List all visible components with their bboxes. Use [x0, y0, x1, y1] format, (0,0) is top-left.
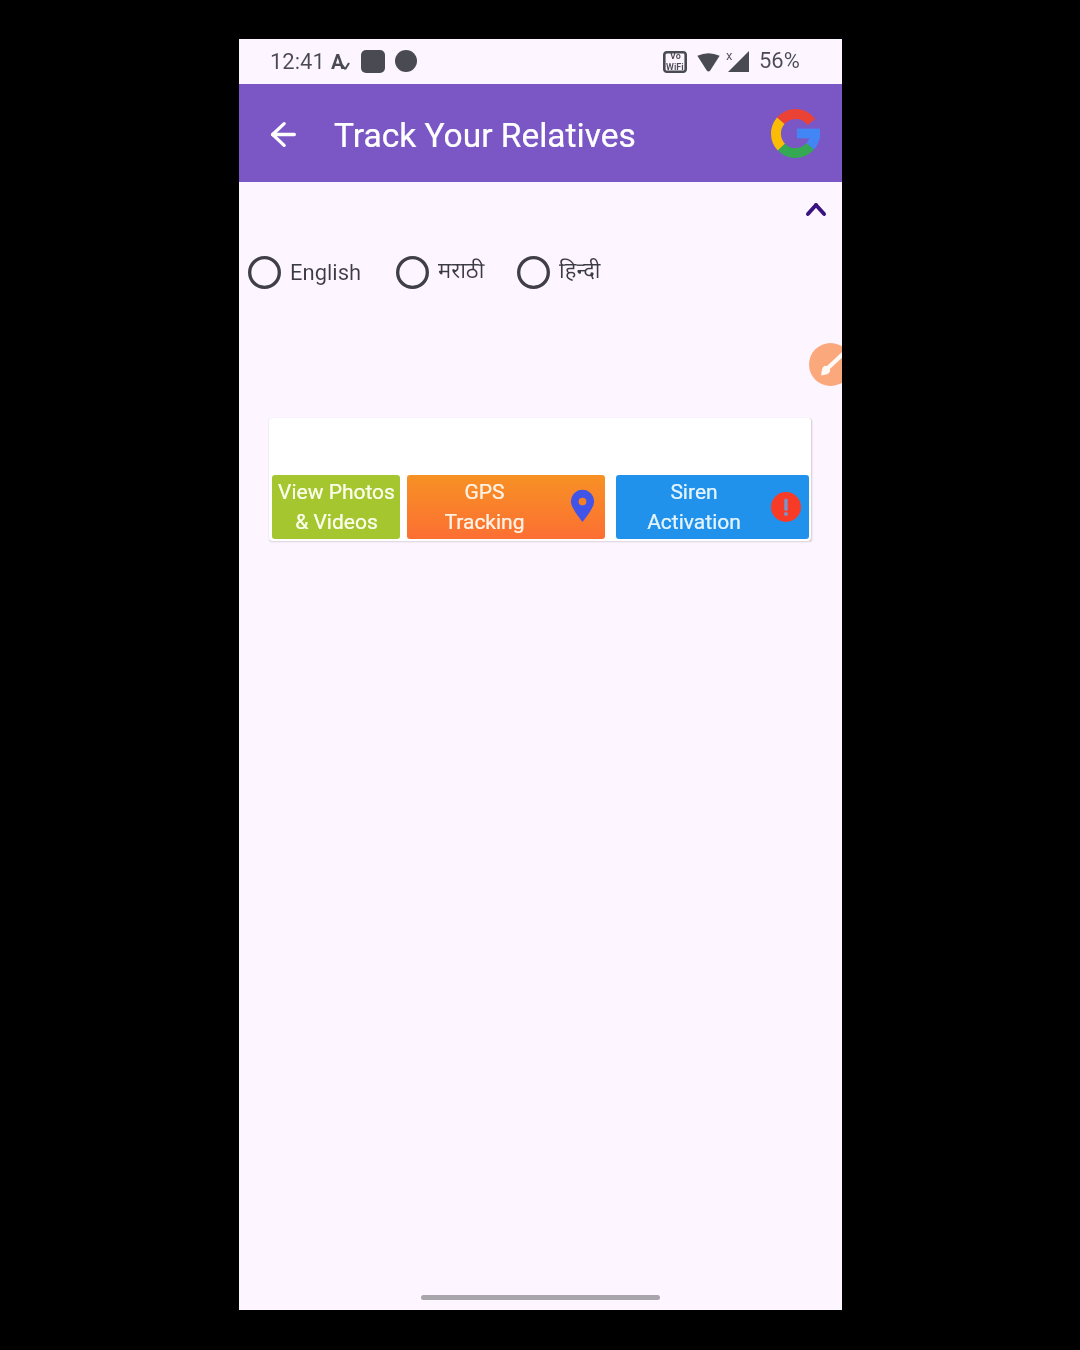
- staticText: 12:41: [270, 49, 325, 75]
- staticText: Siren Activation: [647, 480, 741, 534]
- staticText: मराठी: [438, 258, 485, 287]
- staticText: A: [331, 50, 345, 73]
- button[interactable]: View Photos & Videos: [272, 475, 400, 539]
- staticText: View Photos & Videos: [278, 480, 395, 534]
- staticText: हिन्दी: [559, 258, 601, 287]
- button[interactable]: Edit: [809, 343, 842, 386]
- button[interactable]: मराठी: [396, 256, 485, 289]
- staticText: 56%: [759, 48, 800, 74]
- staticText: Track Your Relatives: [334, 116, 636, 155]
- button[interactable]: Back: [261, 112, 306, 157]
- staticText: x: [726, 48, 733, 63]
- staticText: GPS Tracking: [444, 480, 525, 534]
- staticText: English: [290, 260, 362, 286]
- button[interactable]: Google account: [768, 106, 823, 161]
- button[interactable]: Collapse: [796, 193, 836, 233]
- button[interactable]: हिन्दी: [517, 256, 601, 289]
- staticText: WiFi: [666, 62, 684, 73]
- button[interactable]: English: [248, 256, 362, 289]
- staticText: Vo: [670, 51, 681, 62]
- button[interactable]: Siren Activation: [616, 475, 809, 539]
- button[interactable]: GPS Tracking: [407, 475, 605, 539]
